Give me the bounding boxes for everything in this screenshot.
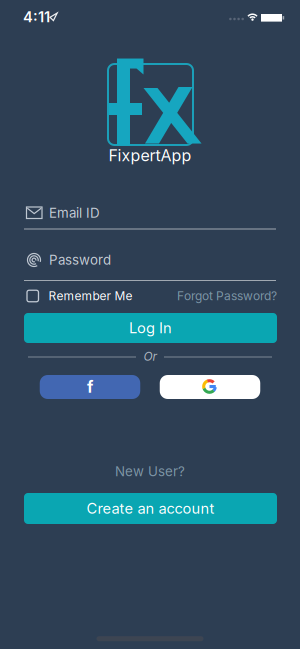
button[interactable]: Create an account xyxy=(24,493,277,524)
button[interactable]: Forgot Password? xyxy=(157,287,277,305)
staticText: Email ID xyxy=(49,205,100,221)
staticText: Or xyxy=(143,349,157,364)
staticText: Remember Me xyxy=(48,289,132,303)
staticText: Password xyxy=(49,252,111,268)
button[interactable]: Sign in with Facebook xyxy=(40,375,140,399)
button[interactable]: Remember Me xyxy=(27,287,157,305)
staticText: Log In xyxy=(129,319,172,337)
staticText: New User? xyxy=(115,464,185,479)
staticText: f xyxy=(87,378,93,396)
staticText: FixpertApp xyxy=(108,146,191,165)
staticText: Create an account xyxy=(86,500,214,517)
staticText: Forgot Password? xyxy=(177,289,277,303)
button[interactable]: Sign in with Google xyxy=(160,375,260,399)
staticText: 4:11 xyxy=(23,8,50,25)
button[interactable]: Log In xyxy=(24,313,277,343)
